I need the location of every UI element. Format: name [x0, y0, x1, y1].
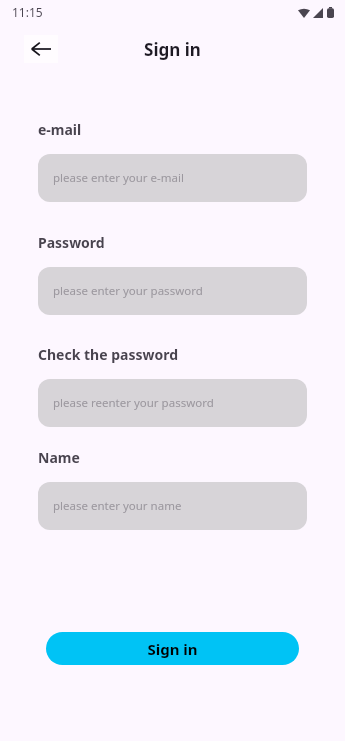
staticText: e-mail [38, 120, 82, 139]
staticText: please enter your name [53, 498, 182, 514]
staticText: please reenter your password [53, 395, 214, 411]
staticText: please enter your password [53, 283, 203, 299]
staticText: Check the password [38, 345, 179, 364]
button[interactable]: please enter your e-mail [38, 154, 307, 202]
button[interactable]: Back [24, 35, 58, 63]
staticText: Sign in [144, 38, 201, 61]
staticText: 11:15 [12, 4, 43, 20]
button[interactable]: Sign in [46, 632, 299, 665]
button[interactable]: please enter your name [38, 482, 307, 530]
staticText: please enter your e-mail [53, 170, 184, 186]
staticText: Password [38, 233, 105, 252]
button[interactable]: please enter your password [38, 267, 307, 315]
staticText: Name [38, 448, 80, 467]
staticText: Sign in [147, 639, 198, 659]
button[interactable]: please reenter your password [38, 379, 307, 427]
